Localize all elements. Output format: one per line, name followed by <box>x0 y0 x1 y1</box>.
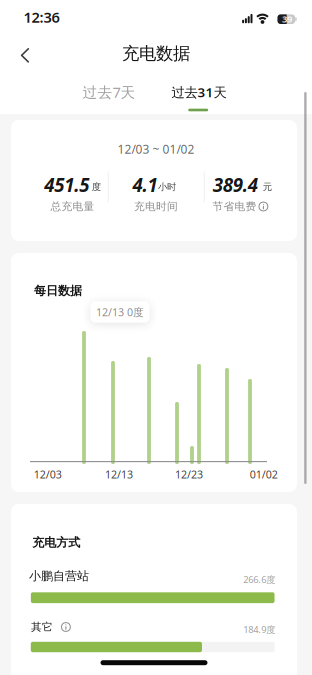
staticText: 充电方式 <box>32 535 80 550</box>
staticText: 12:36 <box>23 7 59 27</box>
staticText: 度 <box>92 181 101 193</box>
staticText: 39 <box>282 13 292 25</box>
staticText: 每日数据 <box>34 283 82 298</box>
staticText: 01/02 <box>250 467 278 481</box>
staticText: 451.5 <box>44 172 89 197</box>
staticText: 12/03 ~ 01/02 <box>117 141 194 157</box>
staticText: 元 <box>263 181 272 193</box>
staticText: 总充电量 <box>51 200 95 213</box>
staticText: 小时 <box>158 181 176 193</box>
staticText: 4.1 <box>132 172 157 197</box>
staticText: 其它 <box>31 620 53 633</box>
staticText: 12/03 <box>34 467 62 481</box>
staticText: 过去31天 <box>171 83 226 101</box>
staticText: 节省电费 <box>212 200 256 213</box>
staticText: 12/23 <box>175 467 203 481</box>
staticText: 12/13 0度 <box>96 305 144 319</box>
staticText: 184.9度 <box>243 623 275 636</box>
staticText: 小鹏自营站 <box>29 569 89 583</box>
staticText: 过去7天 <box>82 82 135 102</box>
staticText: 389.4 <box>213 172 258 197</box>
staticText: 12/13 <box>105 467 133 481</box>
staticText: 充电数据 <box>122 43 190 64</box>
staticText: 充电时间 <box>134 200 178 213</box>
staticText: 266.6度 <box>243 573 275 586</box>
